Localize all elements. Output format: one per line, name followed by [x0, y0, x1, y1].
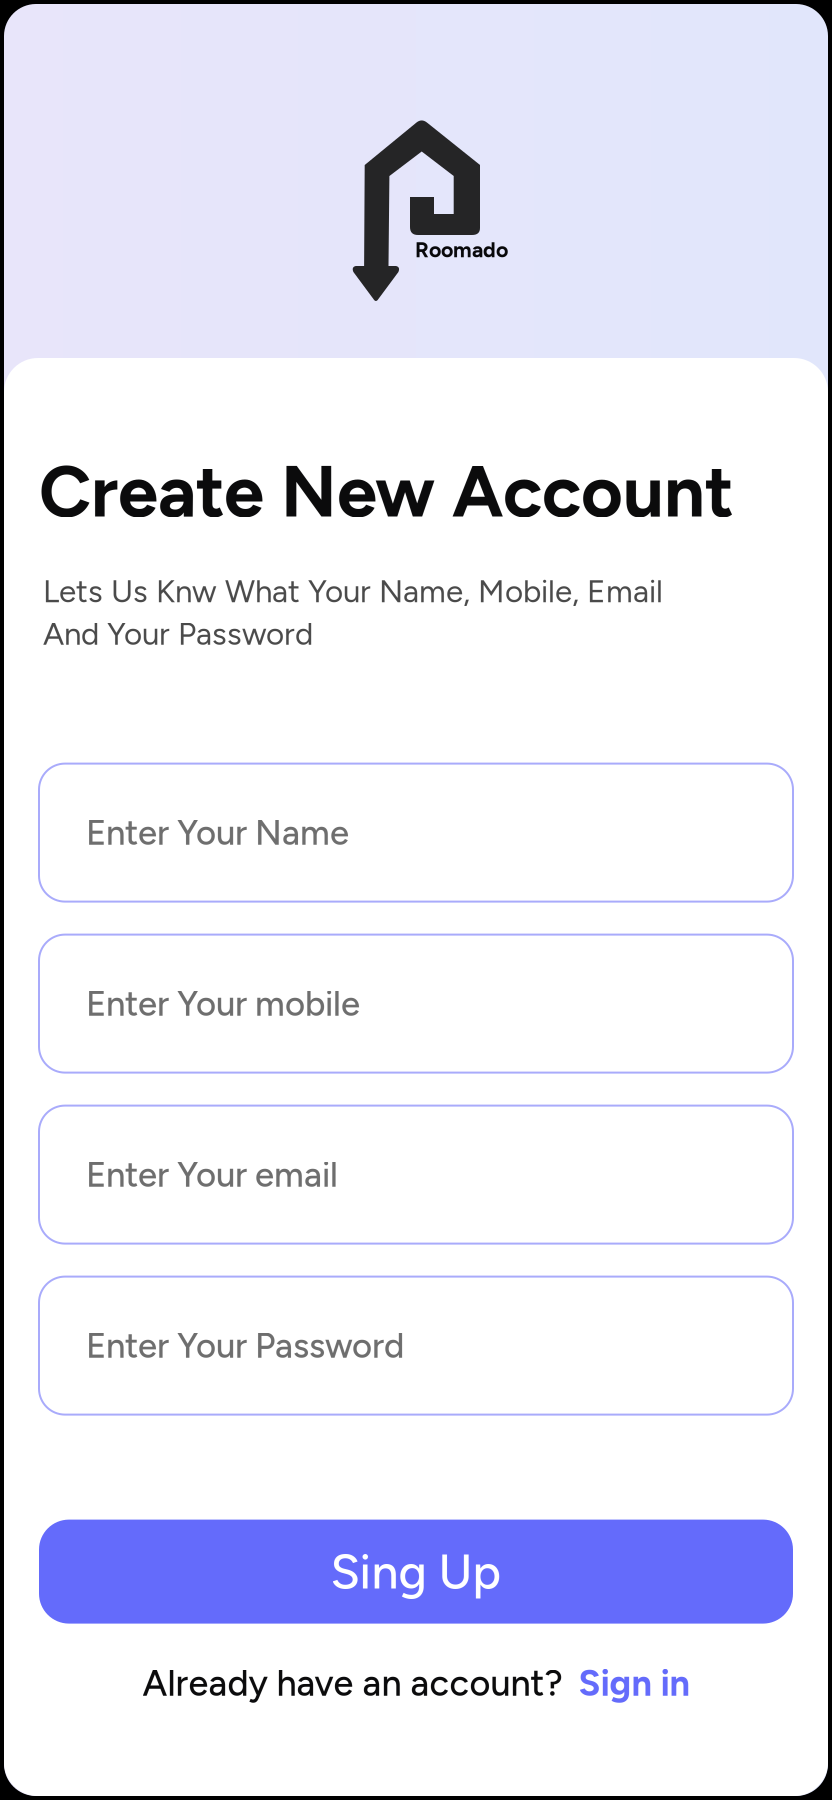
staticText: Enter Your email — [86, 1154, 338, 1195]
staticText: Lets Us Knw What Your Name, Mobile, Emai… — [43, 572, 663, 610]
staticText: Enter Your Password — [86, 1325, 404, 1366]
button[interactable]: Enter Your email — [39, 1106, 793, 1244]
staticText: Create New Account — [39, 448, 734, 534]
staticText: And Your Password — [43, 615, 313, 653]
button[interactable]: Enter Your Name — [39, 764, 793, 902]
staticText: Sign in — [578, 1662, 689, 1705]
button[interactable]: Sing Up — [39, 1520, 793, 1624]
staticText: Enter Your mobile — [86, 983, 360, 1024]
staticText: Roomado — [415, 237, 508, 263]
staticText: Sing Up — [330, 1543, 501, 1600]
button[interactable]: Enter Your Password — [39, 1277, 793, 1415]
button[interactable]: Sign in — [562, 1662, 689, 1705]
staticText: Already have an account? — [142, 1662, 562, 1705]
staticText: Enter Your Name — [86, 812, 349, 853]
button[interactable]: Enter Your mobile — [39, 935, 793, 1073]
